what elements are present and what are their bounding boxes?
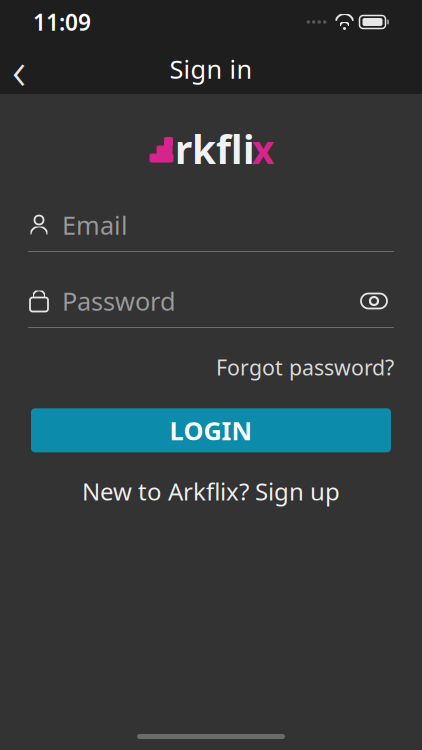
staticText: Sign in	[169, 52, 252, 86]
staticText: New to Arkflix? Sign up	[82, 475, 340, 507]
staticText: LOGIN	[169, 413, 252, 447]
button[interactable]: Back	[0, 46, 38, 92]
staticText: rkfli	[175, 123, 255, 175]
staticText: x	[252, 123, 274, 175]
button[interactable]: Show password	[354, 285, 394, 317]
staticText: Email	[62, 208, 128, 242]
staticText: 11:09	[33, 7, 91, 37]
staticText: Password	[62, 284, 176, 318]
button[interactable]: LOGIN	[31, 408, 391, 452]
staticText: ‹	[12, 34, 26, 104]
staticText: Forgot password?	[216, 353, 394, 381]
button[interactable]: Forgot password?	[216, 348, 394, 386]
button[interactable]: New to Arkflix? Sign up	[70, 468, 352, 514]
